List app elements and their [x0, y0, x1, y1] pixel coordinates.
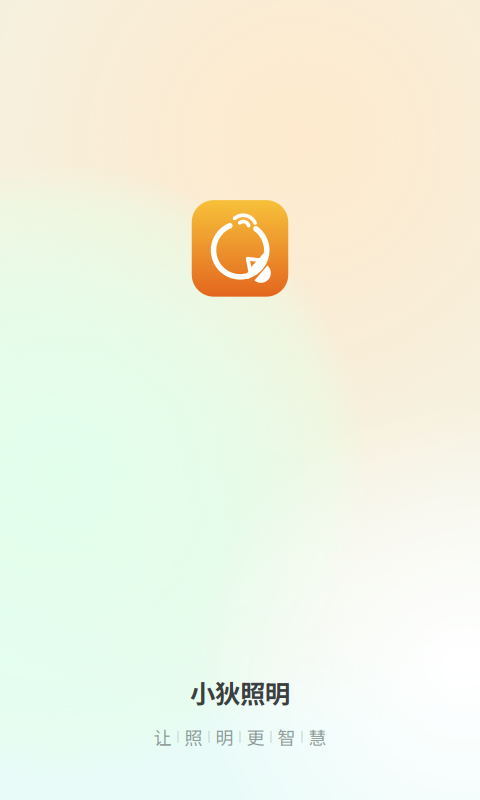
staticText: 小狄照明 [190, 674, 290, 711]
staticText: 照 [184, 724, 202, 750]
staticText: 慧 [308, 724, 326, 750]
staticText: 更 [246, 724, 264, 750]
staticText: 智 [277, 724, 295, 750]
staticText: 让 [153, 724, 171, 750]
staticText: 明 [215, 724, 233, 750]
